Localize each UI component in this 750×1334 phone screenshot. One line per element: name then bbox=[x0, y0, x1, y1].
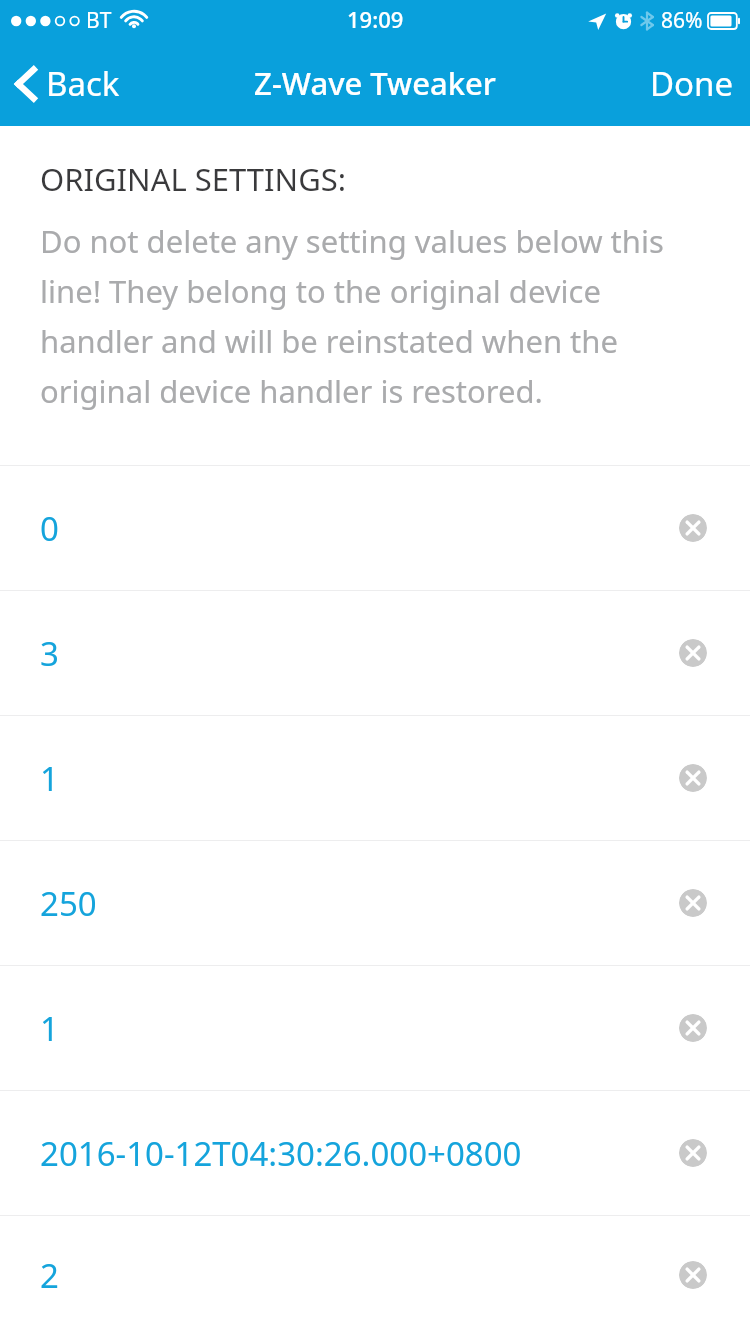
staticText: BT bbox=[86, 6, 112, 35]
staticText: 86% bbox=[661, 6, 703, 35]
staticText: ORIGINAL SETTINGS: bbox=[40, 158, 347, 200]
button[interactable]: Delete bbox=[679, 514, 707, 542]
button[interactable]: Delete bbox=[679, 1261, 707, 1289]
button[interactable]: 0 bbox=[0, 466, 750, 590]
button[interactable]: Done bbox=[634, 53, 750, 114]
staticText: Back bbox=[46, 61, 120, 106]
staticText: 2 bbox=[40, 1253, 59, 1298]
staticText: 250 bbox=[40, 881, 97, 926]
button[interactable]: Delete bbox=[679, 1139, 707, 1167]
button[interactable]: Delete bbox=[679, 764, 707, 792]
button[interactable]: Back bbox=[0, 55, 132, 112]
staticText: Done bbox=[650, 61, 734, 106]
staticText: 2016-10-12T04:30:26.000+0800 bbox=[40, 1131, 522, 1176]
staticText: 0 bbox=[40, 506, 59, 551]
button[interactable]: 250 bbox=[0, 841, 750, 965]
button[interactable]: 2 bbox=[0, 1216, 750, 1334]
button[interactable]: 2016-10-12T04:30:26.000+0800 bbox=[0, 1091, 750, 1215]
button[interactable]: Delete bbox=[679, 1014, 707, 1042]
staticText: 1 bbox=[40, 1006, 59, 1051]
button[interactable]: 3 bbox=[0, 591, 750, 715]
staticText: 19:09 bbox=[347, 4, 404, 34]
button[interactable]: Delete bbox=[679, 889, 707, 917]
staticText: 3 bbox=[40, 631, 59, 676]
button[interactable]: 1 bbox=[0, 966, 750, 1090]
staticText: 1 bbox=[40, 756, 59, 801]
button[interactable]: 1 bbox=[0, 716, 750, 840]
button[interactable]: Delete bbox=[679, 639, 707, 667]
staticText: Do not delete any setting values below t… bbox=[40, 220, 664, 412]
staticText: Z-Wave Tweaker bbox=[254, 62, 496, 104]
